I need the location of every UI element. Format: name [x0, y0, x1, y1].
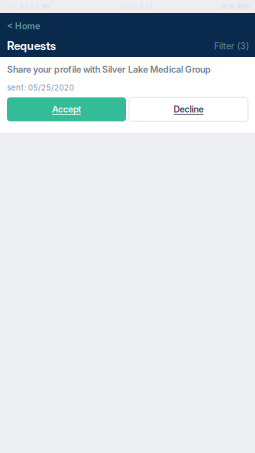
button[interactable]: Filter (3) — [211, 37, 249, 55]
staticText: < Home — [7, 21, 40, 31]
button[interactable]: < Home — [0, 13, 255, 35]
staticText: Filter (3) — [214, 41, 249, 51]
staticText: Share your profile with Silver Lake Medi… — [7, 64, 211, 75]
staticText: sent: 05/25/2020 — [7, 83, 74, 92]
staticText: Decline — [173, 104, 203, 115]
button[interactable]: Accept — [7, 97, 126, 121]
staticText: Requests — [7, 39, 56, 53]
staticText: Accept — [52, 104, 81, 115]
button[interactable]: Decline — [129, 97, 248, 121]
